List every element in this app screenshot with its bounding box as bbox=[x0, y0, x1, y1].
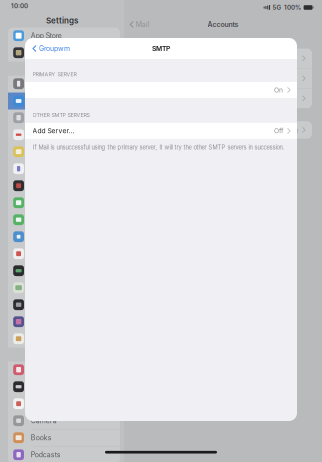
staticText: 10:00 bbox=[11, 2, 28, 10]
button[interactable]: News bbox=[8, 245, 120, 262]
button[interactable]: Mail bbox=[124, 17, 150, 32]
button[interactable]: Podcasts bbox=[8, 446, 120, 462]
staticText: Wallet bbox=[31, 48, 51, 57]
button[interactable]: Calendar bbox=[8, 126, 120, 143]
staticText: Accounts bbox=[207, 20, 238, 29]
button[interactable]: Camera bbox=[8, 412, 120, 429]
staticText: Groupwm bbox=[39, 44, 70, 53]
button[interactable]: Photos bbox=[8, 395, 120, 412]
staticText: PRIMARY SERVER bbox=[32, 71, 76, 77]
button[interactable]: Stocks bbox=[8, 262, 120, 279]
button[interactable]: App Store bbox=[8, 27, 120, 44]
staticText: Contacts bbox=[31, 113, 60, 122]
staticText: Push bbox=[282, 126, 298, 134]
staticText: If Mail is unsuccessful using the primar… bbox=[32, 144, 284, 151]
staticText: Add Server... bbox=[32, 127, 74, 135]
staticText: Passwords bbox=[31, 79, 67, 88]
button[interactable]: Notes bbox=[8, 143, 120, 160]
staticText: Books bbox=[31, 433, 52, 442]
button[interactable]: Maps bbox=[8, 279, 120, 296]
button[interactable]: Mail bbox=[8, 92, 120, 109]
staticText: App Store bbox=[31, 31, 62, 40]
button[interactable]: Translate bbox=[8, 296, 120, 313]
button[interactable]: Groupwm bbox=[25, 40, 70, 57]
button[interactable]: Freeform bbox=[8, 177, 120, 194]
button[interactable] bbox=[25, 82, 297, 98]
button[interactable]: Home bbox=[8, 330, 120, 347]
button[interactable]: TV bbox=[8, 378, 120, 395]
button[interactable]: Wallet bbox=[8, 44, 120, 61]
staticText: On bbox=[274, 86, 283, 94]
staticText: Mail bbox=[136, 20, 150, 29]
button[interactable]: Shortcuts bbox=[8, 313, 120, 330]
button[interactable]: Contacts bbox=[8, 109, 120, 126]
button[interactable]: Safari bbox=[8, 228, 120, 245]
staticText: Notes bbox=[31, 147, 50, 156]
button[interactable]: Music bbox=[8, 361, 120, 378]
staticText: 5G bbox=[273, 4, 282, 11]
staticText: 100% bbox=[284, 4, 301, 11]
button[interactable]: Reminders bbox=[8, 160, 120, 177]
staticText: Settings bbox=[46, 16, 78, 25]
staticText: Mail bbox=[31, 97, 45, 105]
button[interactable]: Passwords bbox=[8, 75, 120, 92]
staticText: SMTP bbox=[152, 44, 170, 53]
staticText: Camera bbox=[31, 416, 57, 425]
staticText: Calendar bbox=[31, 130, 61, 139]
staticText: OTHER SMTP SERVERS bbox=[32, 112, 89, 118]
staticText: Podcasts bbox=[31, 450, 61, 459]
button[interactable]: Add Server... bbox=[25, 123, 297, 139]
button[interactable]: FaceTime bbox=[8, 211, 120, 228]
button[interactable]: Books bbox=[8, 429, 120, 446]
staticText: Off bbox=[274, 127, 283, 135]
button[interactable]: Messages bbox=[8, 194, 120, 211]
